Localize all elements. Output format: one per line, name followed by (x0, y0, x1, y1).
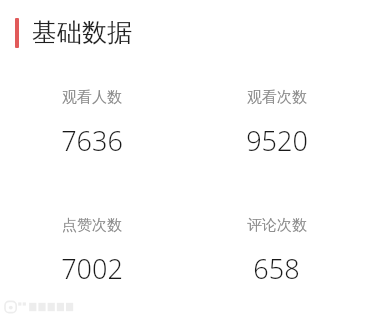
button[interactable]: 评论次数 (184, 214, 369, 289)
staticText: 658 (253, 250, 300, 287)
staticText: 观看人数 (62, 88, 122, 107)
button[interactable]: 观看次数 (184, 86, 369, 161)
button[interactable]: 基础数据 (0, 17, 369, 48)
other: Watermark (5, 300, 79, 314)
staticText: 7636 (61, 122, 123, 159)
staticText: 基础数据 (32, 17, 132, 48)
button[interactable]: 观看人数 (0, 86, 184, 161)
staticText: 9520 (246, 122, 308, 159)
staticText: 7002 (61, 250, 123, 287)
staticText: 点赞次数 (62, 216, 122, 235)
staticText: 观看次数 (247, 88, 307, 107)
button[interactable]: 点赞次数 (0, 214, 184, 289)
staticText: 评论次数 (247, 216, 307, 235)
